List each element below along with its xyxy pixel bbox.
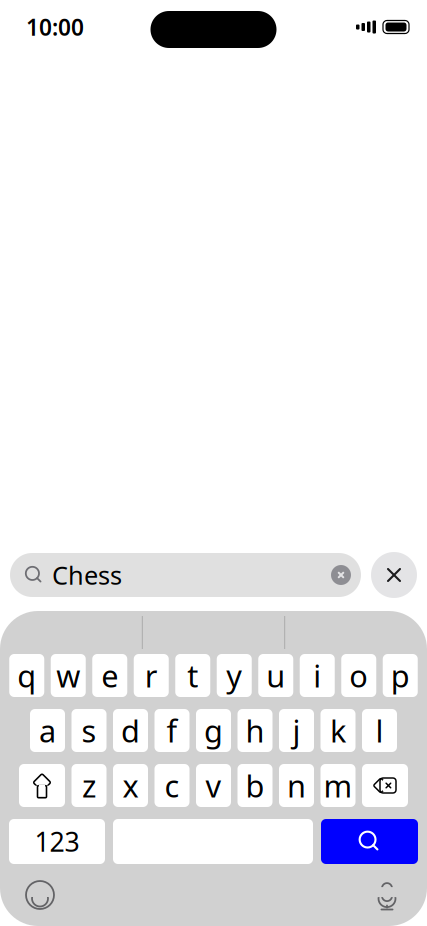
button[interactable]: k xyxy=(320,709,355,752)
button[interactable]: Emoji xyxy=(18,873,62,917)
staticText: c xyxy=(164,765,179,806)
staticText: r xyxy=(145,655,158,696)
staticText: 10:00 xyxy=(26,12,84,42)
staticText: z xyxy=(82,765,96,806)
staticText: v xyxy=(205,765,221,806)
button[interactable]: 123 xyxy=(9,819,105,864)
staticText: h xyxy=(245,710,264,751)
staticText: k xyxy=(330,710,346,751)
button[interactable]: q xyxy=(9,654,44,697)
button[interactable]: f xyxy=(154,709,189,752)
button[interactable]: l xyxy=(362,709,397,752)
button[interactable]: c xyxy=(154,764,189,807)
staticText: p xyxy=(391,655,410,696)
staticText: g xyxy=(204,710,223,751)
staticText: y xyxy=(226,655,242,696)
button[interactable]: z xyxy=(71,764,106,807)
staticText: q xyxy=(17,655,36,696)
staticText: Chess xyxy=(52,558,122,592)
button[interactable]: m xyxy=(320,764,355,807)
staticText: w xyxy=(56,655,80,696)
staticText: s xyxy=(81,710,96,751)
button[interactable]: h xyxy=(237,709,272,752)
staticText: n xyxy=(287,765,306,806)
staticText: t xyxy=(187,655,198,696)
staticText: m xyxy=(323,765,352,806)
staticText: f xyxy=(166,710,177,751)
staticText: 123 xyxy=(34,824,79,859)
button[interactable]: d xyxy=(113,709,148,752)
button[interactable]: g xyxy=(196,709,231,752)
button[interactable]: n xyxy=(279,764,314,807)
button[interactable]: i xyxy=(300,654,335,697)
staticText: x xyxy=(122,765,138,806)
button[interactable]: e xyxy=(92,654,127,697)
staticText: d xyxy=(121,710,140,751)
staticText: l xyxy=(375,710,383,751)
button[interactable]: Clear text xyxy=(327,561,355,589)
button[interactable]: t xyxy=(175,654,210,697)
button[interactable]: Delete xyxy=(362,764,408,807)
staticText: b xyxy=(245,765,264,806)
button[interactable]: v xyxy=(196,764,231,807)
button[interactable]: w xyxy=(51,654,86,697)
button[interactable]: y xyxy=(217,654,252,697)
button[interactable]: x xyxy=(113,764,148,807)
button[interactable]: Shift xyxy=(19,764,65,807)
button[interactable]: p xyxy=(383,654,418,697)
staticText: i xyxy=(313,655,321,696)
staticText: u xyxy=(266,655,285,696)
staticText: e xyxy=(101,655,118,696)
staticText: j xyxy=(292,710,300,751)
button[interactable]: a xyxy=(30,709,65,752)
button[interactable]: u xyxy=(258,654,293,697)
button[interactable]: j xyxy=(279,709,314,752)
button[interactable]: Dictation xyxy=(365,873,409,917)
button[interactable]: Close search xyxy=(371,552,417,598)
button[interactable]: b xyxy=(237,764,272,807)
button[interactable]: r xyxy=(134,654,169,697)
button[interactable]: o xyxy=(341,654,376,697)
button[interactable]: Search xyxy=(321,819,418,864)
staticText: o xyxy=(349,655,368,696)
staticText: a xyxy=(39,710,56,751)
button[interactable]: s xyxy=(71,709,106,752)
